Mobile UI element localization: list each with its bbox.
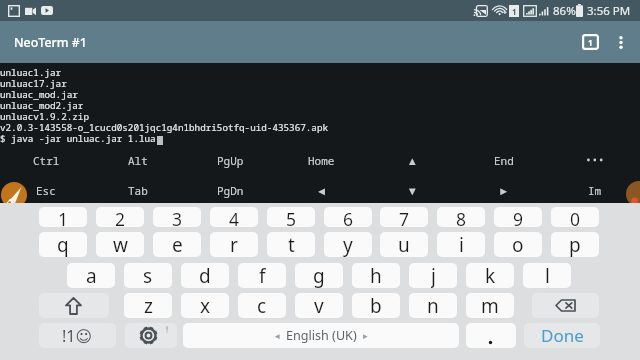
staticText: unluac17.jar: [0, 77, 67, 90]
button[interactable]: y: [324, 232, 372, 257]
staticText: b: [370, 293, 382, 318]
staticText: Im: [588, 183, 602, 198]
button[interactable]: r: [210, 232, 258, 257]
staticText: e: [172, 232, 183, 257]
staticText: i: [459, 232, 464, 257]
staticText: u: [398, 232, 410, 257]
staticText: Alt: [128, 153, 148, 168]
button[interactable]: p: [551, 232, 599, 257]
button[interactable]: Im: [549, 175, 640, 205]
staticText: g: [313, 263, 325, 288]
button[interactable]: PgDn: [184, 175, 276, 205]
button[interactable]: 9: [494, 207, 542, 227]
button[interactable]: g: [295, 263, 343, 288]
button[interactable]: More keys: [549, 145, 640, 175]
button[interactable]: Settings: [125, 323, 177, 348]
staticText: t: [288, 232, 295, 257]
button[interactable]: w: [96, 232, 144, 257]
button[interactable]: l: [523, 263, 571, 288]
button[interactable]: n: [409, 293, 457, 318]
staticText: Home: [308, 153, 335, 168]
staticText: d: [199, 263, 211, 288]
button[interactable]: Esc: [0, 175, 92, 205]
button[interactable]: d: [181, 263, 229, 288]
button[interactable]: Home: [276, 145, 367, 175]
staticText: 0: [570, 207, 581, 227]
staticText: v2.0.3-143558-o_1cucd0s201jqc1g4n1bhdri5…: [0, 121, 329, 134]
button[interactable]: z: [124, 293, 172, 318]
staticText: h: [370, 263, 382, 288]
button[interactable]: m: [466, 293, 514, 318]
staticText: 6: [343, 207, 354, 227]
button[interactable]: End: [458, 145, 549, 175]
staticText: n: [427, 293, 439, 318]
button[interactable]: 2: [96, 207, 144, 227]
button[interactable]: Done: [524, 323, 600, 348]
staticText: 5: [286, 207, 297, 227]
button[interactable]: 4: [210, 207, 258, 227]
staticText: End: [494, 153, 514, 168]
button[interactable]: !1☺: [39, 323, 116, 348]
staticText: f: [259, 263, 266, 288]
button[interactable]: 0: [551, 207, 599, 227]
button[interactable]: f: [238, 263, 286, 288]
button[interactable]: Sessions: [571, 23, 610, 61]
button[interactable]: i: [437, 232, 485, 257]
button[interactable]: Alt: [92, 145, 184, 175]
staticText: k: [485, 263, 496, 288]
button[interactable]: Quick action: [1, 182, 27, 208]
button[interactable]: ▼: [367, 175, 458, 205]
staticText: 3: [172, 207, 183, 227]
staticText: unluac_mod.jar: [0, 88, 78, 101]
staticText: Done: [541, 324, 584, 347]
button[interactable]: Quick action 2: [626, 181, 640, 207]
staticText: unluac1.jar: [0, 66, 62, 79]
staticText: z: [144, 293, 153, 318]
button[interactable]: x: [181, 293, 229, 318]
button[interactable]: b: [352, 293, 400, 318]
button[interactable]: 8: [437, 207, 485, 227]
staticText: ▶: [497, 183, 511, 198]
button[interactable]: q: [39, 232, 87, 257]
button[interactable]: Backspace: [532, 293, 599, 318]
button[interactable]: PgUp: [184, 145, 276, 175]
button[interactable]: o: [494, 232, 542, 257]
staticText: 2: [115, 207, 126, 227]
button[interactable]: j: [409, 263, 457, 288]
staticText: m: [481, 293, 499, 318]
staticText: 4: [229, 207, 240, 227]
button[interactable]: 1: [39, 207, 87, 227]
button[interactable]: Shift: [39, 293, 109, 318]
button[interactable]: ▲: [367, 145, 458, 175]
staticText: s: [143, 263, 153, 288]
button[interactable]: 7: [380, 207, 428, 227]
button[interactable]: 5: [267, 207, 315, 227]
staticText: ◂: [275, 331, 280, 341]
button[interactable]: s: [124, 263, 172, 288]
button[interactable]: e: [153, 232, 201, 257]
staticText: Esc: [36, 183, 56, 198]
button[interactable]: Tab: [92, 175, 184, 205]
button[interactable]: ◂: [183, 323, 459, 348]
staticText: $ java -jar unluac.jar 1.lua: [0, 132, 156, 145]
staticText: 9: [513, 207, 524, 227]
button[interactable]: h: [352, 263, 400, 288]
button[interactable]: [466, 323, 516, 348]
button[interactable]: k: [466, 263, 514, 288]
staticText: English (UK): [286, 327, 357, 344]
button[interactable]: c: [238, 293, 286, 318]
staticText: l: [545, 263, 550, 288]
button[interactable]: Ctrl: [0, 145, 92, 175]
staticText: PgUp: [217, 153, 244, 168]
button[interactable]: a: [67, 263, 115, 288]
button[interactable]: v: [295, 293, 343, 318]
button[interactable]: 3: [153, 207, 201, 227]
button[interactable]: More options: [606, 23, 635, 61]
button[interactable]: ▶: [458, 175, 549, 205]
button[interactable]: t: [267, 232, 315, 257]
staticText: ▸: [363, 331, 368, 341]
button[interactable]: ◀: [276, 175, 367, 205]
button[interactable]: 6: [324, 207, 372, 227]
staticText: 1: [58, 207, 69, 227]
button[interactable]: u: [380, 232, 428, 257]
